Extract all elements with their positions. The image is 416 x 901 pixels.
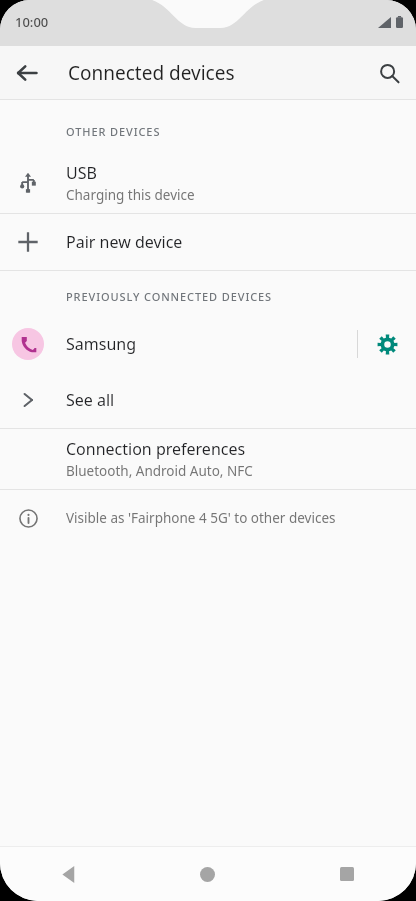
button[interactable]: Device settings: [358, 316, 416, 372]
button[interactable]: USB: [0, 153, 416, 213]
button[interactable]: Back: [0, 847, 138, 901]
staticText: See all: [66, 389, 115, 411]
staticText: PREVIOUSLY CONNECTED DEVICES: [66, 289, 400, 304]
button[interactable]: Home: [138, 847, 277, 901]
button[interactable]: Back: [7, 53, 47, 93]
button[interactable]: Recent apps: [277, 847, 416, 901]
button[interactable]: Search: [369, 53, 409, 93]
button[interactable]: Samsung: [0, 316, 357, 372]
staticText: Samsung: [66, 333, 137, 355]
staticText: Connection preferences: [66, 438, 246, 460]
staticText: Charging this device: [66, 186, 195, 204]
staticText: 10:00: [15, 13, 49, 31]
button[interactable]: Connection preferences: [0, 429, 416, 489]
button[interactable]: See all: [0, 372, 416, 428]
staticText: Connected devices: [68, 60, 235, 86]
staticText: Visible as 'Fairphone 4 5G' to other dev…: [66, 509, 336, 527]
staticText: Bluetooth, Android Auto, NFC: [66, 462, 253, 480]
staticText: Pair new device: [66, 231, 183, 253]
button[interactable]: Pair new device: [0, 214, 416, 270]
staticText: USB: [66, 162, 97, 184]
staticText: OTHER DEVICES: [66, 124, 400, 139]
